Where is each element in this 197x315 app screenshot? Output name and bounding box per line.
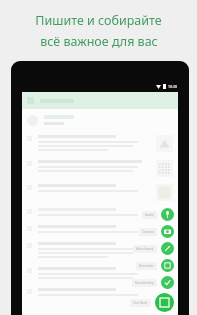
button[interactable] — [22, 221, 178, 238]
button[interactable] — [22, 284, 178, 301]
button[interactable]: Text Note — [155, 293, 174, 312]
button[interactable]: Reminder — [136, 262, 157, 270]
staticText: 10:30 — [168, 84, 177, 89]
button[interactable]: Handwriting — [132, 279, 157, 287]
button[interactable] — [22, 180, 178, 204]
button[interactable] — [22, 263, 178, 284]
button[interactable]: Text Note — [130, 299, 151, 307]
staticText: Camera — [142, 230, 154, 234]
button[interactable]: Attachment — [161, 242, 174, 255]
staticText: всё важное для вас — [40, 33, 158, 50]
staticText: Text Note — [133, 301, 148, 305]
button[interactable]: Audio — [142, 211, 157, 219]
button[interactable]: Handwriting — [161, 276, 174, 289]
button[interactable]: Audio — [161, 208, 174, 221]
staticText: Attachment — [136, 247, 154, 251]
button[interactable]: Camera — [139, 228, 157, 236]
staticText: Пишите и собирайте — [35, 12, 162, 29]
staticText: Audio — [145, 213, 154, 217]
button[interactable] — [22, 156, 178, 180]
button[interactable]: Camera — [161, 225, 174, 238]
staticText: Reminder — [139, 264, 154, 268]
button[interactable] — [22, 204, 178, 221]
button[interactable] — [22, 131, 178, 156]
staticText: Handwriting — [135, 281, 154, 285]
button[interactable]: Reminder — [161, 259, 174, 272]
button[interactable] — [22, 238, 178, 263]
button[interactable] — [22, 109, 178, 131]
button[interactable]: Attachment — [133, 245, 157, 253]
